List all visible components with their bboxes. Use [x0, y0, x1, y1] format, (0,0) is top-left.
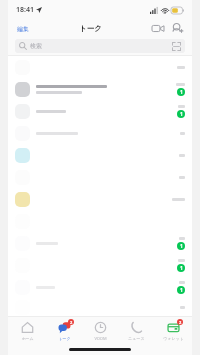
button[interactable]: 編集: [15, 24, 31, 34]
staticText: トーク: [58, 336, 71, 341]
button[interactable]: 検索: [15, 39, 185, 53]
button[interactable]: 1: [8, 100, 192, 122]
button[interactable]: 2: [47, 318, 81, 344]
button[interactable]: [8, 188, 192, 210]
button[interactable]: [8, 122, 192, 144]
button[interactable]: Video call: [150, 22, 166, 35]
button[interactable]: 1: [8, 232, 192, 254]
button[interactable]: Scan QR code: [172, 42, 181, 51]
button[interactable]: ホーム: [10, 318, 44, 344]
button[interactable]: [8, 144, 192, 166]
staticText: 18:41: [16, 5, 34, 15]
staticText: 1: [180, 111, 183, 118]
button[interactable]: 1: [8, 254, 192, 276]
staticText: VOOM: [94, 336, 107, 341]
button[interactable]: 2: [156, 318, 190, 344]
staticText: 2: [70, 320, 73, 325]
staticText: 2: [179, 320, 182, 325]
staticText: 1: [180, 243, 183, 250]
staticText: 1: [180, 265, 183, 272]
button[interactable]: VOOM: [83, 318, 117, 344]
staticText: 1: [180, 89, 183, 96]
staticText: 検索: [30, 42, 42, 50]
staticText: トーク: [79, 24, 102, 33]
staticText: ニュース: [128, 336, 145, 341]
button[interactable]: Add friend: [170, 21, 185, 36]
staticText: 編集: [17, 25, 29, 33]
button[interactable]: 1: [8, 78, 192, 100]
staticText: ウォレット: [163, 336, 184, 341]
staticText: ホーム: [21, 336, 34, 341]
staticText: 1: [180, 287, 183, 294]
button[interactable]: 1: [8, 276, 192, 298]
button[interactable]: ニュース: [119, 318, 153, 344]
